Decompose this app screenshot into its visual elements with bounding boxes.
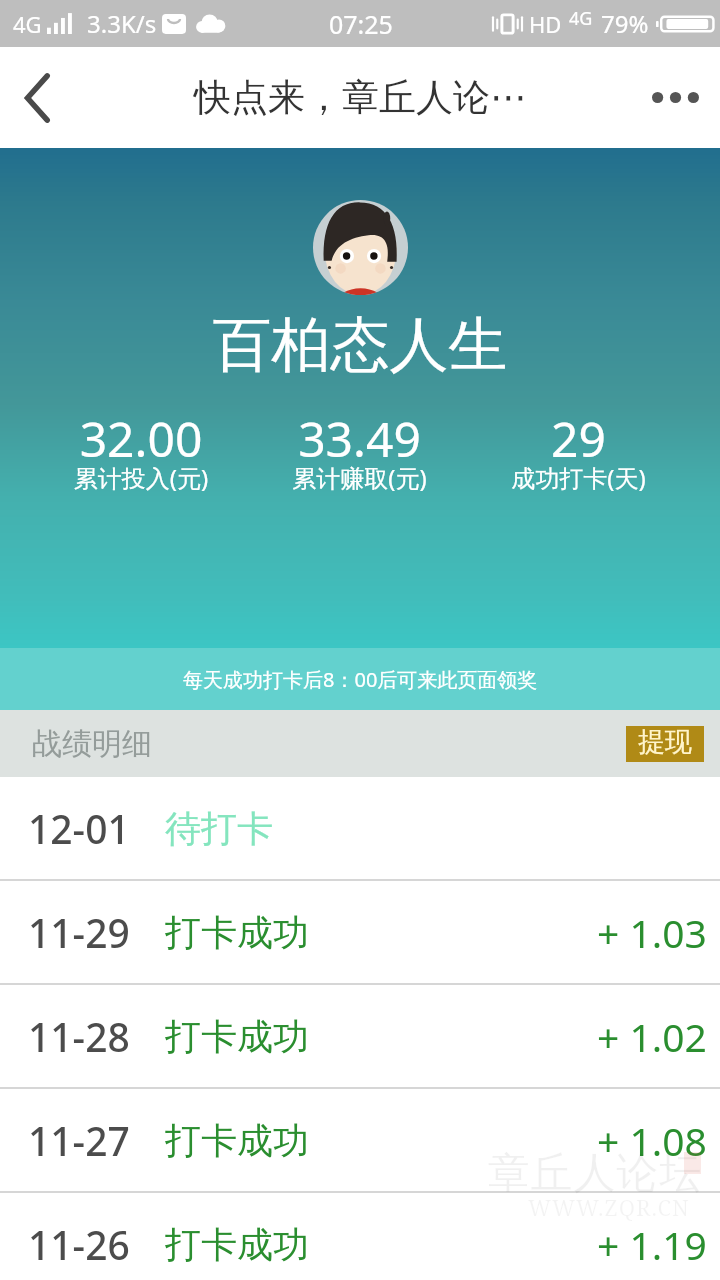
staticText: 11-29 [28, 906, 130, 959]
staticText: 打卡成功 [165, 1222, 309, 1267]
staticText: 11-28 [28, 1010, 130, 1063]
staticText: 战绩明细 [32, 725, 152, 763]
staticText: 提现 [638, 725, 692, 759]
button[interactable]: 11-27 [0, 1089, 720, 1193]
staticText: + 1.02 [597, 1010, 707, 1063]
staticText: + 1.08 [597, 1114, 707, 1167]
staticText: 打卡成功 [165, 910, 309, 955]
staticText: 累计投入(元) [32, 461, 250, 494]
button[interactable]: Back [0, 47, 75, 148]
staticText: 快点来，章丘人论⋯ [194, 74, 527, 121]
staticText: 每天成功打卡后8：00后可来此页面领奖 [183, 666, 538, 693]
staticText: 4G [569, 6, 593, 31]
button[interactable]: More options [630, 47, 720, 148]
staticText: 累计赚取(元) [250, 461, 469, 494]
button[interactable]: 11-28 [0, 985, 720, 1089]
staticText: 成功打卡(天) [469, 461, 688, 494]
button[interactable]: 12-01 [0, 777, 720, 881]
staticText: HD [529, 9, 562, 39]
staticText: 11-26 [28, 1218, 130, 1271]
staticText: 29 [469, 406, 688, 471]
button[interactable]: 11-26 [0, 1193, 720, 1280]
staticText: WWW.ZQR.CN [528, 1192, 690, 1222]
staticText: 07:25 [329, 7, 393, 41]
staticText: 章丘人论坛 [487, 1147, 702, 1200]
staticText: 3.3K/s [87, 7, 157, 40]
staticText: + 1.19 [597, 1218, 707, 1271]
button[interactable]: 11-29 [0, 881, 720, 985]
staticText: 待打卡 [165, 806, 273, 851]
button[interactable]: 提现 [626, 726, 704, 762]
staticText: 32.00 [32, 406, 250, 471]
staticText: + 1.03 [597, 906, 707, 959]
staticText: 百柏态人生 [0, 308, 720, 382]
staticText: 12-01 [28, 802, 130, 855]
staticText: 33.49 [250, 406, 469, 471]
staticText: 打卡成功 [165, 1118, 309, 1163]
staticText: 11-27 [28, 1114, 130, 1167]
staticText: 79% [601, 7, 649, 40]
staticText: 打卡成功 [165, 1014, 309, 1059]
staticText: 4G [13, 9, 42, 39]
